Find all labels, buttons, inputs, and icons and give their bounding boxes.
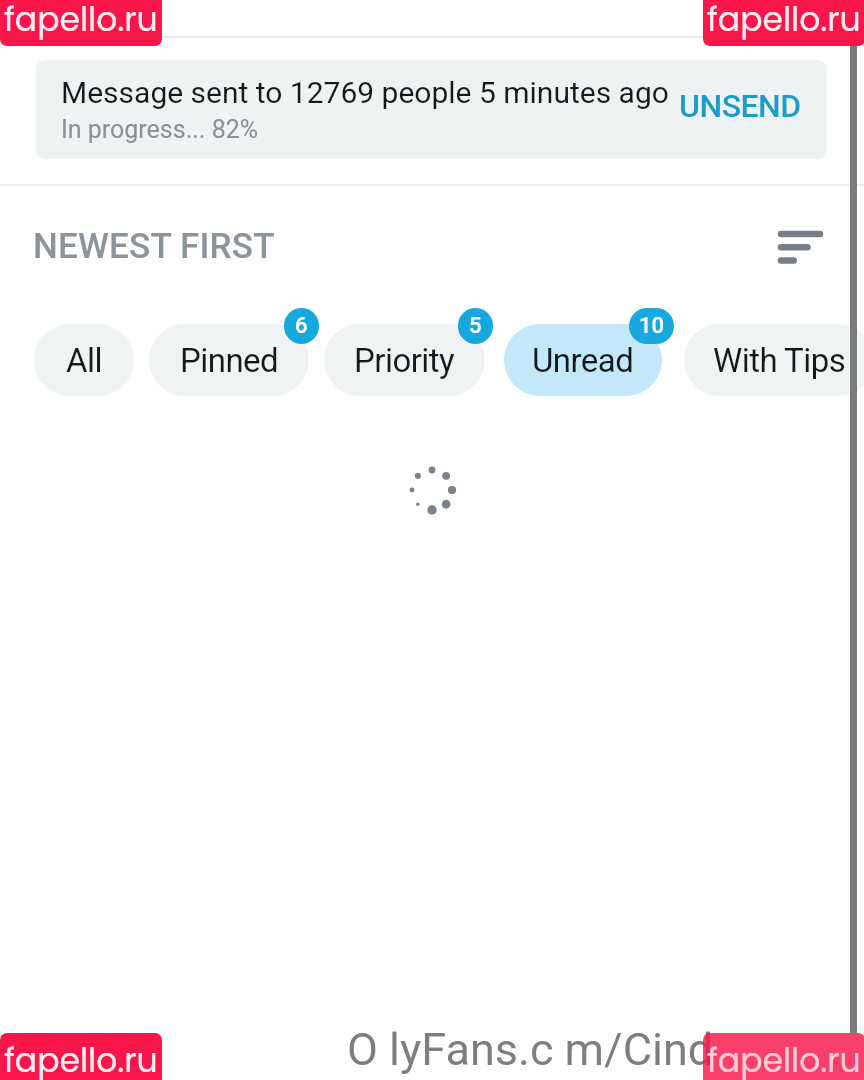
staticText: UNSEND <box>679 87 801 125</box>
staticText: 6 <box>295 313 308 339</box>
button[interactable]: With Tips <box>684 324 864 396</box>
staticText: 5 <box>469 313 482 339</box>
button[interactable]: Pinned <box>149 324 309 396</box>
staticText: NEWEST FIRST <box>33 226 275 267</box>
staticText: fapello.ru <box>707 0 861 42</box>
button[interactable]: UNSEND <box>679 87 801 125</box>
staticText: All <box>66 341 102 380</box>
button[interactable]: Sort messages <box>764 212 838 286</box>
staticText: fapello.ru <box>707 1037 861 1080</box>
staticText: Message sent to 12769 people 5 minutes a… <box>61 75 669 110</box>
button[interactable]: Priority <box>324 324 485 396</box>
button[interactable]: NEWEST FIRST <box>20 210 300 276</box>
staticText: In progress... 82% <box>61 115 259 144</box>
staticText: Priority <box>354 341 455 380</box>
button[interactable]: Unread <box>504 324 662 396</box>
staticText: With Tips <box>713 341 846 380</box>
staticText: Pinned <box>180 341 279 380</box>
other: Loading messages <box>404 462 460 518</box>
staticText: fapello.ru <box>4 0 158 42</box>
button[interactable]: All <box>34 324 134 396</box>
staticText: O lyFans.c m/Cind <box>347 1023 714 1076</box>
staticText: 10 <box>639 313 665 339</box>
staticText: fapello.ru <box>4 1037 158 1080</box>
button[interactable]: Message sent to 12769 people 5 minutes a… <box>36 60 827 159</box>
staticText: Unread <box>532 341 634 380</box>
